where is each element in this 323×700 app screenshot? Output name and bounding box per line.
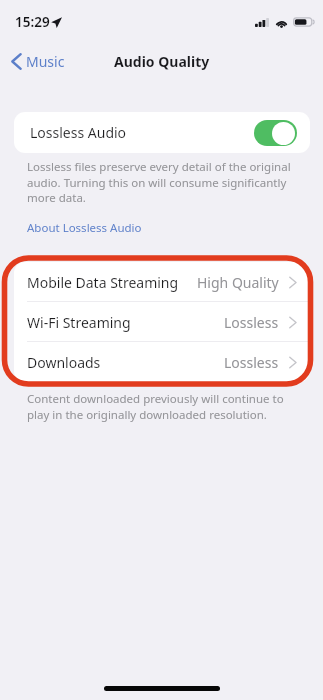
button[interactable]: Wi-Fi Streaming: [14, 302, 310, 342]
staticText: Lossless Audio: [30, 123, 127, 142]
staticText: High Quality: [197, 273, 279, 292]
staticText: Mobile Data Streaming: [27, 273, 179, 292]
button[interactable]: Mobile Data Streaming: [14, 262, 310, 302]
button[interactable]: Music: [0, 43, 73, 79]
staticText: Audio Quality: [114, 52, 210, 71]
button[interactable]: About Lossless Audio: [21, 215, 148, 241]
staticText: Music: [26, 52, 65, 71]
staticText: Downloads: [27, 353, 101, 372]
button[interactable]: Downloads: [14, 342, 310, 382]
staticText: Lossless: [224, 353, 279, 372]
staticText: Lossless: [224, 313, 279, 332]
staticText: Wi-Fi Streaming: [27, 313, 131, 332]
staticText: Lossless files preserve every detail of …: [27, 159, 299, 205]
staticText: 15:29: [15, 13, 50, 31]
button[interactable]: Lossless Audio: [14, 112, 310, 153]
button[interactable]: Lossless Audio, on: [254, 120, 297, 146]
staticText: Content downloaded previously will conti…: [27, 391, 299, 422]
staticText: About Lossless Audio: [27, 220, 142, 236]
